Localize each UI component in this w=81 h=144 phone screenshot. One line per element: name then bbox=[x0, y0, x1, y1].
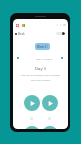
button[interactable]: Play bbox=[42, 126, 58, 129]
staticText: Check your answers bbox=[13, 79, 68, 82]
staticText: Week 21 bbox=[37, 45, 48, 49]
button[interactable]: Play bbox=[42, 95, 58, 111]
button[interactable]: Toggle bbox=[56, 32, 65, 35]
button[interactable]: Previous bbox=[16, 56, 20, 60]
button[interactable]: Week 21 bbox=[35, 43, 50, 50]
button[interactable]: Next bbox=[60, 56, 64, 60]
staticText: Back bbox=[18, 32, 25, 36]
button[interactable]: Back bbox=[15, 32, 25, 36]
button[interactable]: Play bbox=[24, 95, 40, 111]
staticText: What do you remember from this week? bbox=[13, 74, 68, 77]
button[interactable]: Play bbox=[24, 126, 40, 129]
staticText: Week 3 bbox=[44, 57, 53, 60]
staticText: Day 3 bbox=[13, 66, 68, 72]
staticText: Day 2 bbox=[36, 57, 43, 60]
